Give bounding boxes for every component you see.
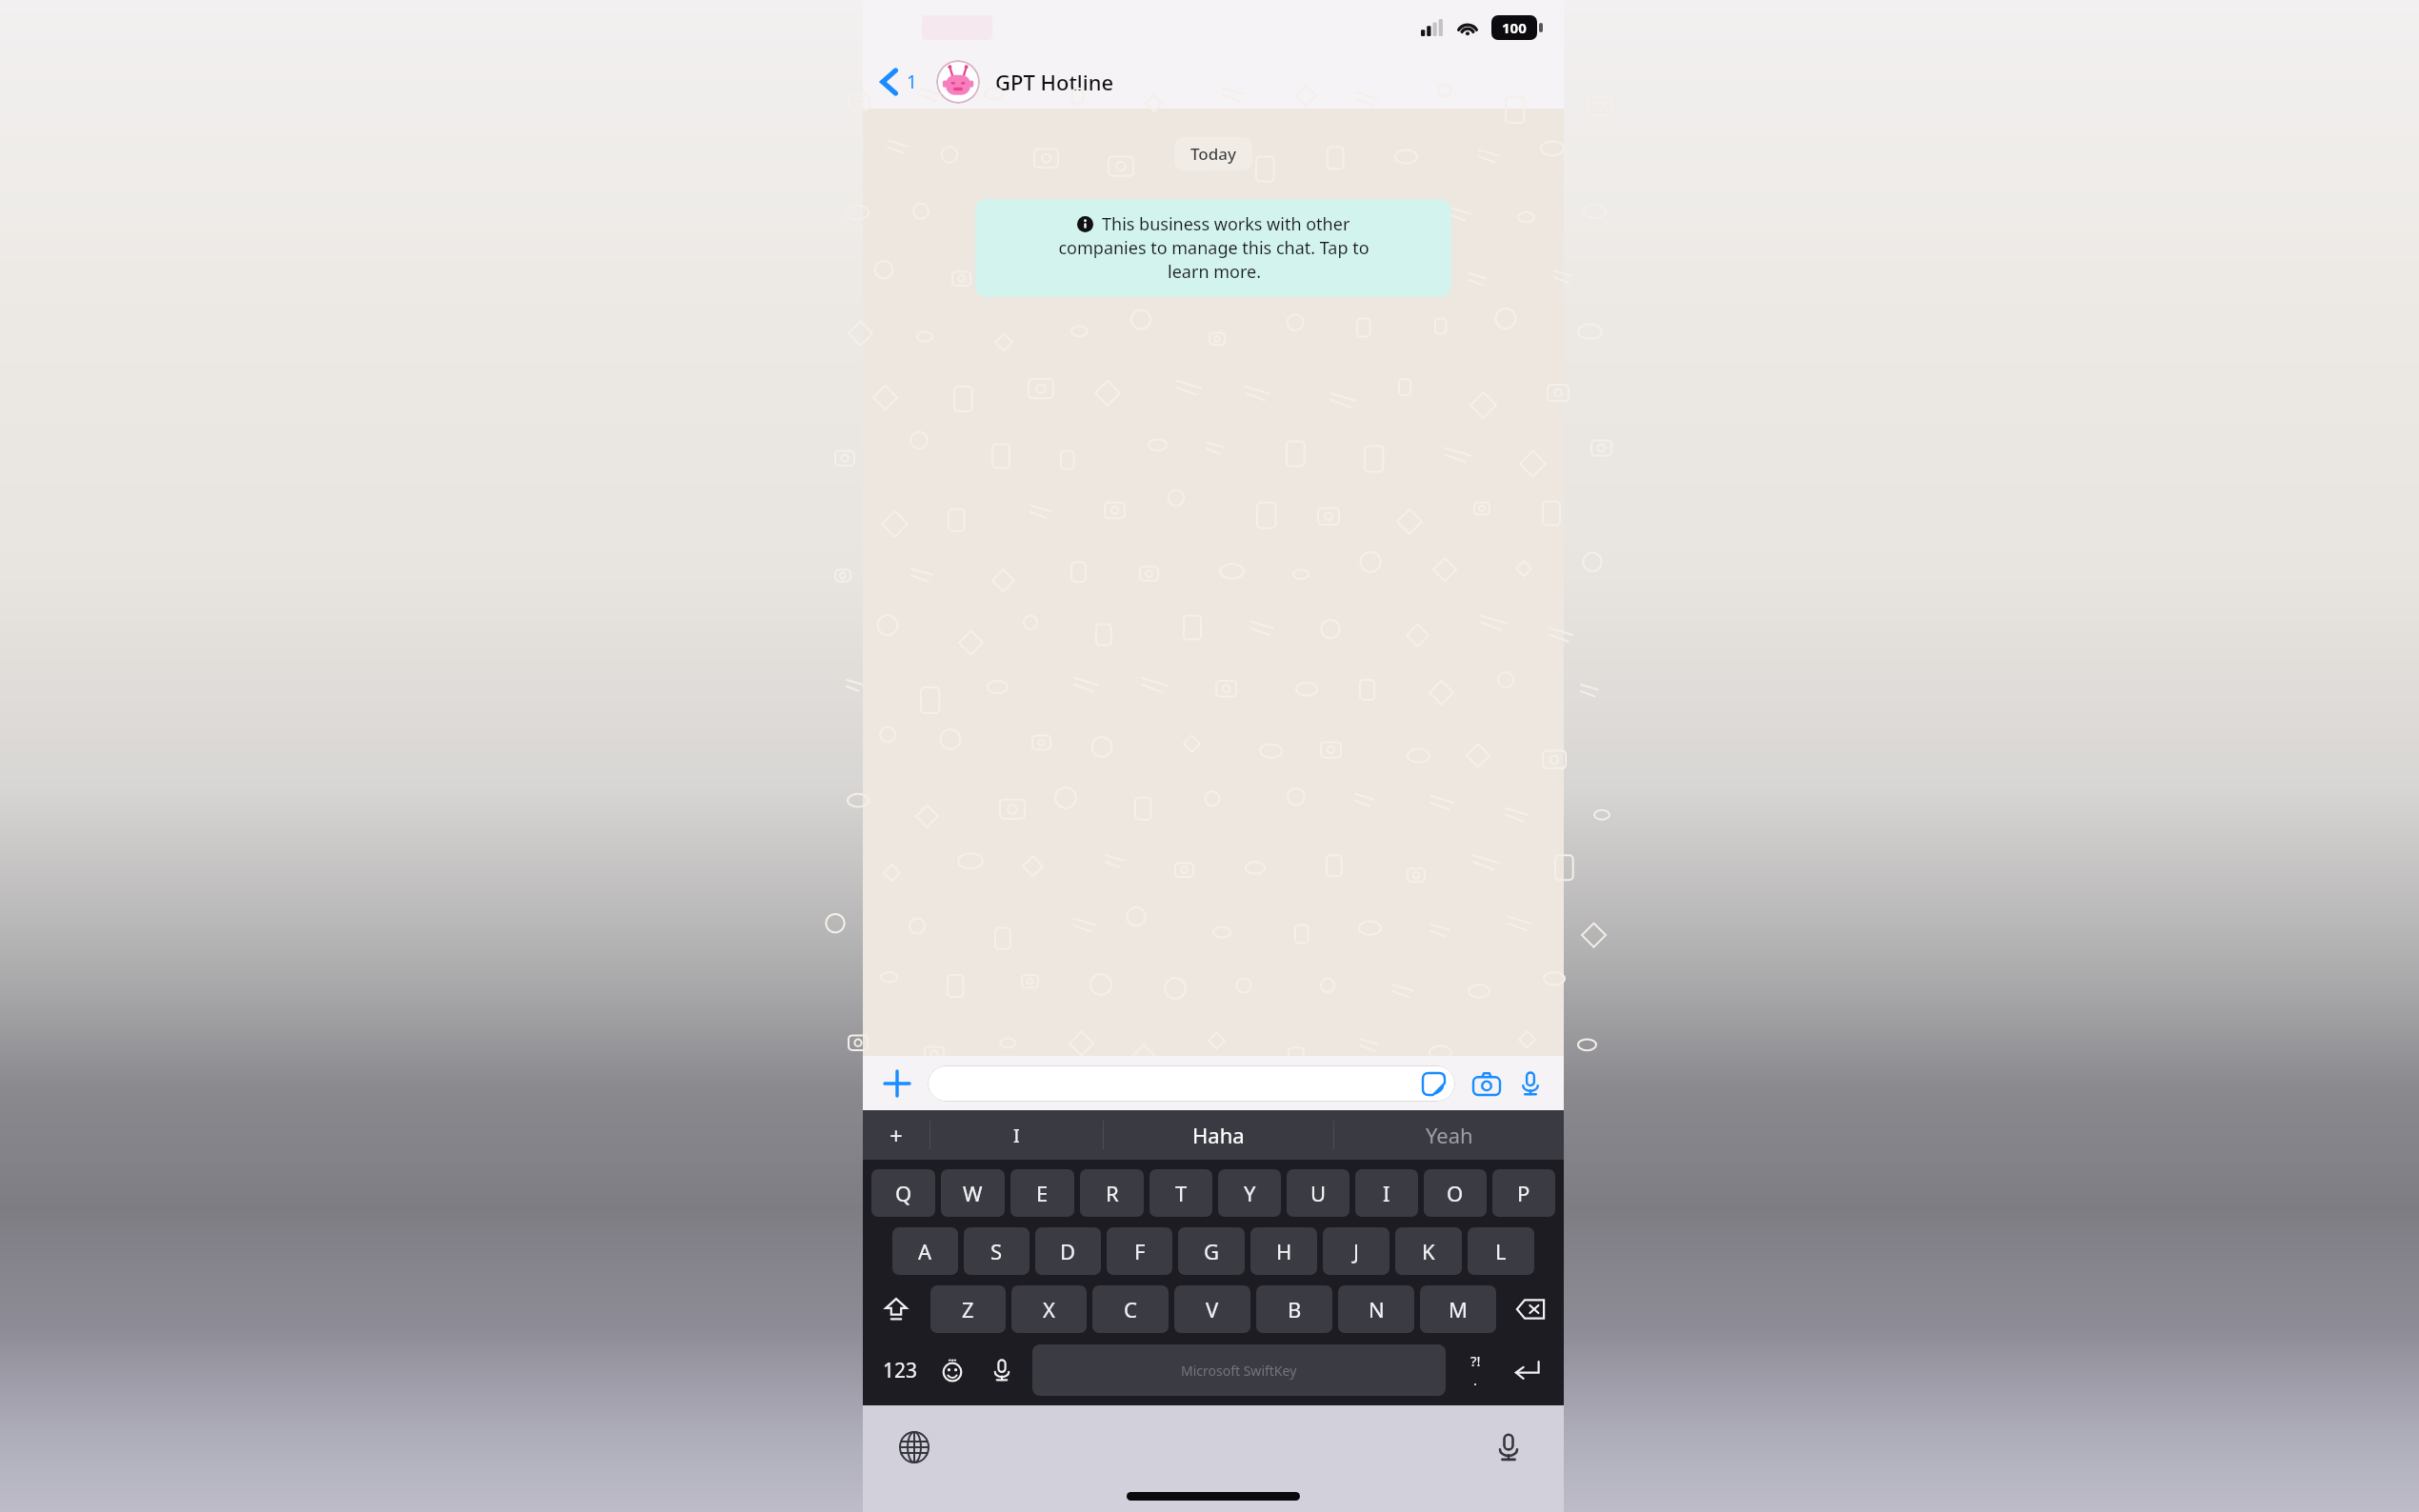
- staticText: Z: [962, 1295, 974, 1323]
- button[interactable]: This business works with other: [975, 199, 1451, 297]
- staticText: L: [1495, 1237, 1507, 1265]
- button[interactable]: U: [1287, 1169, 1349, 1217]
- staticText: J: [1353, 1237, 1360, 1265]
- staticText: 100: [1502, 18, 1527, 37]
- staticText: I: [1013, 1123, 1020, 1148]
- staticText: D: [1060, 1237, 1076, 1265]
- button[interactable]: F: [1107, 1227, 1172, 1275]
- button[interactable]: G: [1178, 1227, 1245, 1275]
- staticText: learn more.: [1168, 260, 1261, 284]
- button[interactable]: Q: [871, 1169, 935, 1217]
- button[interactable]: Back: [874, 64, 923, 100]
- staticText: N: [1369, 1295, 1385, 1323]
- button[interactable]: Change language: [891, 1424, 937, 1470]
- staticText: companies to manage this chat. Tap to: [1058, 236, 1369, 260]
- button[interactable]: P: [1492, 1169, 1555, 1217]
- staticText: W: [963, 1179, 983, 1207]
- staticText: F: [1134, 1237, 1146, 1265]
- button[interactable]: [928, 1065, 1455, 1102]
- staticText: O: [1447, 1179, 1464, 1207]
- button[interactable]: Yeah: [1334, 1110, 1564, 1160]
- staticText: E: [1036, 1179, 1049, 1207]
- button[interactable]: Voice message: [1512, 1065, 1549, 1102]
- staticText: V: [1206, 1295, 1219, 1323]
- staticText: ?!: [1470, 1351, 1481, 1370]
- button[interactable]: Enter: [1499, 1344, 1554, 1396]
- staticText: M: [1449, 1295, 1468, 1323]
- staticText: G: [1204, 1237, 1220, 1265]
- button[interactable]: R: [1080, 1169, 1144, 1217]
- button[interactable]: O: [1424, 1169, 1487, 1217]
- button[interactable]: S: [964, 1227, 1030, 1275]
- button[interactable]: V: [1174, 1285, 1250, 1333]
- button[interactable]: A: [892, 1227, 958, 1275]
- button[interactable]: M: [1420, 1285, 1496, 1333]
- staticText: U: [1310, 1179, 1327, 1207]
- button[interactable]: W: [941, 1169, 1005, 1217]
- staticText: P: [1517, 1179, 1530, 1207]
- staticText: Microsoft SwiftKey: [1181, 1362, 1297, 1380]
- button[interactable]: ?!: [1451, 1344, 1499, 1396]
- staticText: Haha: [1192, 1121, 1245, 1149]
- staticText: 123: [883, 1357, 918, 1384]
- button[interactable]: Shift: [869, 1285, 924, 1333]
- staticText: .: [1473, 1370, 1478, 1389]
- staticText: +: [890, 1120, 903, 1151]
- staticText: T: [1175, 1179, 1188, 1207]
- button[interactable]: T: [1150, 1169, 1212, 1217]
- staticText: B: [1288, 1295, 1302, 1323]
- staticText: A: [918, 1237, 932, 1265]
- staticText: S: [990, 1237, 1003, 1265]
- staticText: X: [1043, 1295, 1055, 1323]
- button[interactable]: Y: [1218, 1169, 1281, 1217]
- staticText: 1: [907, 70, 917, 94]
- button[interactable]: N: [1338, 1285, 1414, 1333]
- staticText: This business works with other: [1102, 212, 1350, 236]
- button[interactable]: I: [930, 1110, 1103, 1160]
- button[interactable]: J: [1323, 1227, 1389, 1275]
- button[interactable]: More: [863, 1110, 930, 1160]
- staticText: GPT Hotline: [995, 68, 1114, 96]
- button[interactable]: Z: [930, 1285, 1006, 1333]
- button[interactable]: Space: [1032, 1344, 1446, 1396]
- button[interactable]: H: [1250, 1227, 1317, 1275]
- button[interactable]: Voice input: [977, 1344, 1027, 1396]
- staticText: Y: [1244, 1179, 1256, 1207]
- button[interactable]: C: [1092, 1285, 1169, 1333]
- button[interactable]: E: [1010, 1169, 1074, 1217]
- button[interactable]: Today: [1174, 137, 1252, 170]
- button[interactable]: L: [1468, 1227, 1534, 1275]
- button[interactable]: X: [1011, 1285, 1087, 1333]
- button[interactable]: Attach: [878, 1064, 916, 1103]
- staticText: Today: [1190, 143, 1236, 165]
- button[interactable]: B: [1256, 1285, 1332, 1333]
- button[interactable]: Dictation: [1486, 1424, 1531, 1470]
- staticText: Yeah: [1426, 1121, 1473, 1149]
- staticText: H: [1276, 1237, 1292, 1265]
- button[interactable]: Emoji: [928, 1344, 977, 1396]
- button[interactable]: Haha: [1104, 1110, 1333, 1160]
- button[interactable]: Backspace: [1503, 1285, 1558, 1333]
- button[interactable]: Camera: [1469, 1065, 1505, 1102]
- staticText: K: [1422, 1237, 1435, 1265]
- button[interactable]: GPT Hotline: [936, 60, 1564, 104]
- staticText: I: [1383, 1179, 1390, 1207]
- staticText: R: [1106, 1179, 1119, 1207]
- button[interactable]: K: [1395, 1227, 1462, 1275]
- button[interactable]: I: [1355, 1169, 1418, 1217]
- button[interactable]: D: [1035, 1227, 1101, 1275]
- staticText: Q: [895, 1179, 912, 1207]
- staticText: C: [1124, 1295, 1137, 1323]
- button[interactable]: 123: [872, 1344, 928, 1396]
